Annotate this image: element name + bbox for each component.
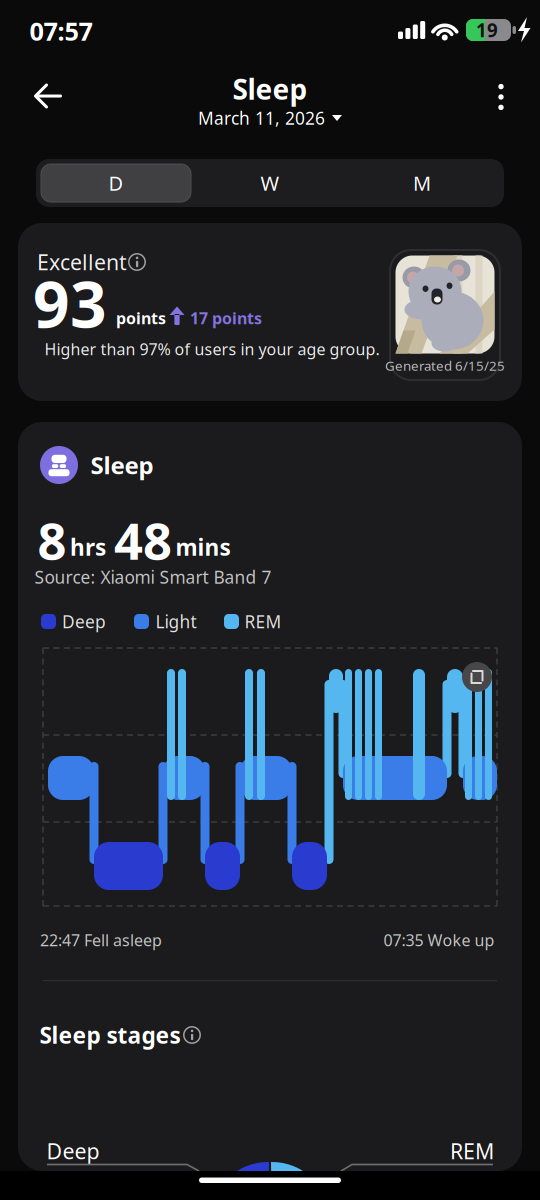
staticText: Higher than 97% of users in your age gro…: [44, 338, 379, 360]
button[interactable]: Score info: [123, 248, 151, 276]
button[interactable]: Generated sleep image: [389, 249, 501, 381]
button[interactable]: M: [346, 161, 498, 205]
staticText: 93: [33, 260, 107, 345]
staticText: Deep: [46, 1137, 99, 1165]
staticText: Deep: [62, 610, 106, 633]
staticText: Generated 6/15/25: [385, 357, 505, 374]
button[interactable]: Sleep stages info: [178, 1021, 206, 1049]
staticText: Source: Xiaomi Smart Band 7: [34, 565, 271, 588]
staticText: 8: [37, 506, 66, 574]
button[interactable]: W: [194, 161, 346, 205]
staticText: hrs: [70, 532, 106, 562]
staticText: points: [116, 307, 166, 329]
staticText: 48: [114, 506, 172, 574]
staticText: March 11, 2026: [198, 106, 325, 129]
staticText: 19: [476, 18, 498, 42]
staticText: D: [108, 170, 123, 196]
button[interactable]: Back: [24, 74, 71, 118]
button[interactable]: March 11, 2026: [198, 106, 342, 129]
staticText: Excellent: [37, 248, 127, 276]
staticText: REM: [244, 610, 281, 633]
staticText: 22:47 Fell asleep: [40, 929, 162, 951]
button[interactable]: Expand chart: [462, 662, 492, 692]
staticText: Sleep: [232, 70, 307, 108]
staticText: mins: [175, 532, 230, 562]
staticText: 17 points: [190, 307, 262, 329]
staticText: W: [260, 170, 279, 196]
staticText: Sleep: [90, 449, 153, 481]
staticText: Light: [155, 610, 196, 633]
staticText: M: [413, 170, 431, 196]
button[interactable]: D: [40, 163, 192, 203]
staticText: 07:35 Woke up: [383, 929, 494, 951]
staticText: 07:57: [29, 14, 92, 48]
staticText: REM: [450, 1137, 494, 1165]
button[interactable]: More options: [488, 74, 514, 120]
staticText: Sleep stages: [39, 1020, 180, 1050]
